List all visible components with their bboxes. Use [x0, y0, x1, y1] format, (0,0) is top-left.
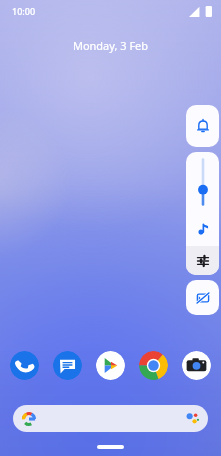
button[interactable]: Chrome	[139, 351, 168, 380]
button[interactable]: Search	[13, 405, 208, 432]
staticText: Monday, 3 Feb	[0, 38, 221, 53]
button[interactable]: Media volume	[186, 152, 219, 212]
button[interactable]: Phone	[10, 351, 39, 380]
button[interactable]: Cast off	[186, 280, 219, 315]
button[interactable]: Camera	[182, 351, 211, 380]
button[interactable]: Ring mode	[186, 105, 219, 147]
button[interactable]: Volume settings	[186, 246, 219, 275]
staticText: 10:00	[12, 5, 36, 17]
button[interactable]: Play Store	[96, 351, 125, 380]
button[interactable]: Messages	[53, 351, 82, 380]
button[interactable]: Music	[186, 212, 219, 246]
